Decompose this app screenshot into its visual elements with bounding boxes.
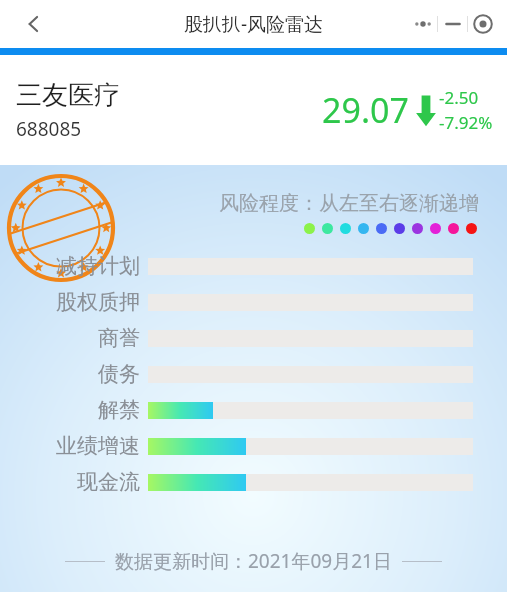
button[interactable]: 现金流 bbox=[0, 464, 507, 500]
staticText: 数据更新时间：2021年09月21日 bbox=[115, 548, 392, 574]
staticText: 减持计划 bbox=[56, 253, 140, 279]
staticText: 债务 bbox=[98, 361, 140, 387]
button[interactable]: 解禁 bbox=[0, 392, 507, 428]
button[interactable]: 股权质押 bbox=[0, 284, 507, 320]
button[interactable]: Minimize bbox=[438, 8, 467, 40]
button[interactable]: 减持计划 bbox=[0, 248, 507, 284]
staticText: 解禁 bbox=[98, 397, 140, 423]
button[interactable]: Back bbox=[14, 4, 54, 44]
staticText: -2.50 bbox=[439, 86, 479, 109]
button[interactable]: 债务 bbox=[0, 356, 507, 392]
staticText: 29.07 bbox=[322, 87, 409, 133]
staticText: 风险程度：从左至右逐渐递增 bbox=[219, 191, 479, 216]
staticText: -7.92% bbox=[439, 111, 493, 134]
staticText: 688085 bbox=[16, 116, 82, 142]
staticText: 现金流 bbox=[77, 469, 140, 495]
staticText: 业绩增速 bbox=[56, 433, 140, 459]
button[interactable]: 业绩增速 bbox=[0, 428, 507, 464]
button[interactable]: Close bbox=[468, 8, 497, 40]
button[interactable]: 商誉 bbox=[0, 320, 507, 356]
staticText: 股扒扒-风险雷达 bbox=[184, 11, 324, 37]
button[interactable]: More bbox=[409, 8, 437, 40]
staticText: 股权质押 bbox=[56, 289, 140, 315]
staticText: 商誉 bbox=[98, 325, 140, 351]
staticText: 三友医疗 bbox=[16, 79, 120, 112]
